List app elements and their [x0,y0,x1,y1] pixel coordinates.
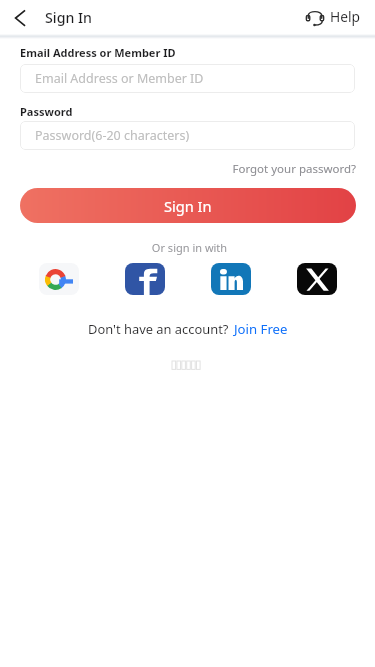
button[interactable]: Password(6-20 characters) [20,121,355,150]
button[interactable]: Sign in with Google [39,263,79,295]
button[interactable]: Sign in with Facebook [125,263,165,295]
button[interactable]: Email Address or Member ID [20,64,355,93]
button[interactable]: Sign In [20,188,356,223]
staticText: Password(6-20 characters) [35,127,190,144]
staticText: Password [20,104,73,119]
staticText: Sign In [164,196,212,216]
staticText: Help [330,7,361,26]
button[interactable]: Sign in with X [297,263,337,295]
staticText: Email Address or Member ID [20,45,176,60]
staticText: Sign In [45,8,92,27]
staticText: Don't have an account? [88,320,229,338]
button[interactable]: Sign in with LinkedIn [211,263,251,295]
button[interactable]: Forgot your password? [0,161,375,177]
button[interactable]: Help [306,2,361,30]
staticText: Email Address or Member ID [35,70,204,87]
button[interactable]: Join Free [234,320,288,338]
button[interactable]: Back [2,0,38,36]
staticText: Or sign in with [2,240,375,255]
